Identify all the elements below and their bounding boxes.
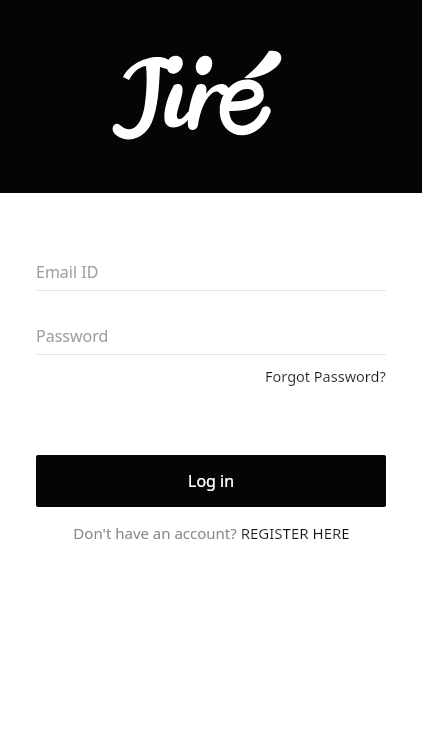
button[interactable]: Email ID <box>36 257 386 287</box>
button[interactable]: Password <box>36 321 386 351</box>
other: Jire logo <box>111 49 311 144</box>
button[interactable]: Forgot Password? <box>265 363 386 389</box>
staticText: Email ID <box>36 261 99 283</box>
staticText: Don't have an account? REGISTER HERE <box>73 523 350 543</box>
button[interactable]: Log in <box>36 455 386 507</box>
button[interactable]: Don't have an account? REGISTER HERE <box>73 519 350 547</box>
staticText: Password <box>36 325 109 347</box>
staticText: Log in <box>188 470 235 492</box>
staticText: Forgot Password? <box>265 366 386 386</box>
